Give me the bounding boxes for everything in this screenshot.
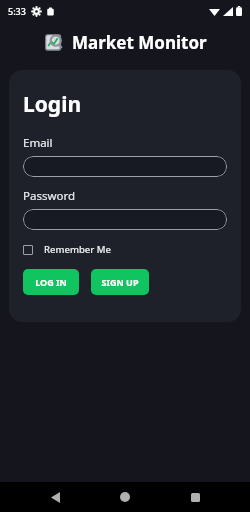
button[interactable] — [23, 209, 227, 230]
staticText: Login — [23, 90, 82, 119]
button[interactable]: SIGN UP — [91, 269, 149, 295]
staticText: Password — [23, 188, 76, 204]
button[interactable]: LOG IN — [23, 269, 79, 295]
staticText: SIGN UP — [101, 276, 139, 288]
staticText: Email — [23, 135, 53, 151]
staticText: LOG IN — [35, 276, 67, 288]
button[interactable] — [23, 156, 227, 177]
staticText: 5:33 — [8, 5, 26, 17]
button[interactable]: Home — [110, 482, 140, 512]
staticText: Remember Me — [44, 243, 111, 256]
button[interactable]: Back — [40, 482, 70, 512]
button[interactable]: Remember Me — [23, 242, 111, 257]
button[interactable]: Recent apps — [180, 482, 210, 512]
staticText: Market Monitor — [72, 31, 207, 54]
